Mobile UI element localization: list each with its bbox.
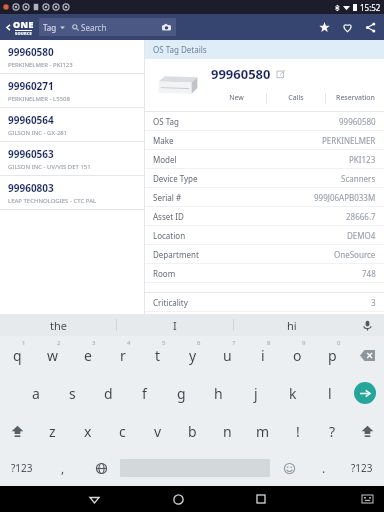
button[interactable]: Back (4, 17, 12, 37)
button[interactable]: Change language (82, 450, 120, 486)
button[interactable]: Criticality (145, 293, 384, 311)
button[interactable]: Share (360, 17, 380, 37)
button[interactable]: ?123 (340, 450, 384, 486)
button[interactable]: j (237, 374, 274, 412)
button[interactable]: Asset ID (145, 207, 384, 225)
staticText: DEMO4 (347, 230, 376, 241)
staticText: LEAP TECHNOLOGIES - CTC PAL (8, 197, 97, 205)
button[interactable]: o (280, 336, 315, 374)
button[interactable]: a (18, 374, 54, 412)
staticText: 99960580 (8, 45, 54, 59)
staticText: OneSource (334, 249, 376, 260)
button[interactable]: s (54, 374, 90, 412)
staticText: Location (153, 230, 186, 241)
button[interactable]: 99960803 (0, 176, 144, 209)
button[interactable]: r (105, 336, 140, 374)
button[interactable]: ?123 (0, 450, 44, 486)
button[interactable]: Tag (39, 18, 176, 36)
button[interactable]: OneSource (13, 18, 34, 36)
staticText: 748 (362, 268, 376, 279)
staticText: z (49, 422, 56, 441)
button[interactable]: , (44, 450, 82, 486)
staticText: 99960580 (339, 116, 376, 127)
button[interactable]: Shift (0, 412, 34, 450)
button[interactable]: t (140, 336, 175, 374)
button[interactable]: y (175, 336, 210, 374)
button[interactable]: z (34, 412, 70, 450)
button[interactable]: ? (315, 412, 350, 450)
button[interactable]: Shift (350, 412, 384, 450)
button[interactable]: 99960564 (0, 108, 144, 141)
staticText: PERKINELMER (322, 135, 376, 146)
staticText: 8 (267, 339, 271, 347)
button[interactable]: Recent apps (248, 486, 274, 512)
button[interactable]: w (35, 336, 70, 374)
button[interactable]: v (140, 412, 175, 450)
button[interactable]: g (163, 374, 200, 412)
button[interactable]: Make (145, 131, 384, 149)
staticText: Room (153, 268, 176, 279)
staticText: e (84, 346, 92, 365)
button[interactable]: Scan barcode (161, 22, 172, 33)
button[interactable]: Like (337, 17, 357, 37)
staticText: Calls (288, 93, 304, 103)
staticText: SOURCE (15, 31, 33, 36)
button[interactable]: i (245, 336, 280, 374)
button[interactable]: ! (280, 412, 315, 450)
staticText: t (155, 346, 161, 365)
button[interactable]: Keyboard (354, 486, 380, 512)
button[interactable]: Emoji (270, 450, 308, 486)
button[interactable]: the (0, 314, 116, 336)
button[interactable]: Backspace (350, 336, 384, 374)
button[interactable]: 99960271 (0, 74, 144, 107)
staticText: Asset ID (153, 211, 184, 222)
button[interactable]: New (207, 91, 266, 105)
staticText: 2 (57, 339, 61, 347)
button[interactable]: q (0, 336, 35, 374)
button[interactable]: hi (234, 314, 350, 336)
button[interactable]: Edit (275, 68, 287, 80)
button[interactable]: h (200, 374, 237, 412)
button[interactable]: m (245, 412, 280, 450)
staticText: w (47, 346, 59, 365)
button[interactable]: 99960580 (0, 40, 144, 73)
button[interactable]: Voice input (350, 314, 384, 336)
button[interactable]: Favorite (314, 17, 334, 37)
button[interactable]: k (274, 374, 311, 412)
staticText: Search (81, 22, 107, 33)
button[interactable]: e (70, 336, 105, 374)
button[interactable]: . (308, 450, 340, 486)
button[interactable]: Location (145, 226, 384, 244)
button[interactable]: Room (145, 264, 384, 282)
staticText: ?123 (351, 461, 373, 475)
staticText: , (61, 460, 65, 476)
button[interactable]: 99960563 (0, 142, 144, 175)
button[interactable]: Serial # (145, 188, 384, 206)
staticText: PERKINELMER - PKI123 (8, 61, 73, 69)
button[interactable]: Home (165, 486, 191, 512)
button[interactable]: c (105, 412, 140, 450)
button[interactable]: f (126, 374, 163, 412)
button[interactable]: x (70, 412, 105, 450)
button[interactable]: Calls (267, 91, 325, 105)
button[interactable]: Back (81, 486, 107, 512)
staticText: GILSON INC - GX-281 (8, 129, 68, 137)
button[interactable]: p (315, 336, 350, 374)
staticText: 99960803 (8, 181, 54, 195)
button[interactable]: Department (145, 245, 384, 263)
button[interactable]: I (117, 314, 233, 336)
button[interactable]: d (90, 374, 126, 412)
staticText: Serial # (153, 192, 182, 203)
button[interactable]: Reservation (326, 91, 384, 105)
button[interactable]: Model (145, 150, 384, 168)
button[interactable]: OS Tag (145, 112, 384, 130)
button[interactable]: Device Type (145, 169, 384, 187)
staticText: r (120, 346, 126, 365)
button[interactable]: b (175, 412, 210, 450)
button[interactable]: u (210, 336, 245, 374)
button[interactable]: n (210, 412, 245, 450)
button[interactable]: Enter (348, 374, 382, 412)
button[interactable]: l (311, 374, 348, 412)
